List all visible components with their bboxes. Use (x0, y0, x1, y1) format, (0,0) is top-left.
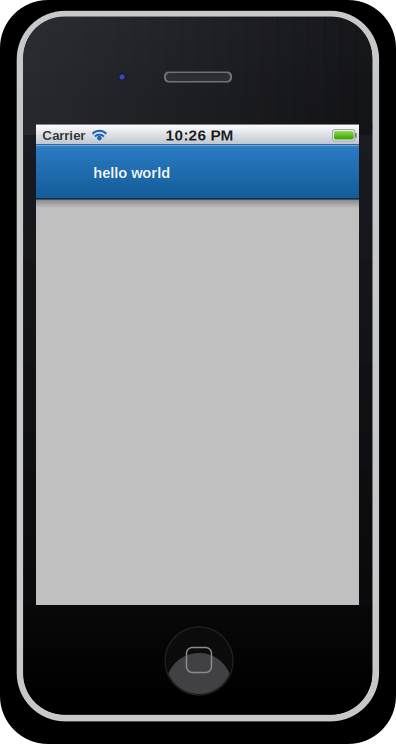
staticText: 10:26 PM (165, 127, 233, 144)
staticText: Carrier (42, 128, 85, 143)
button[interactable]: hello world (93, 161, 213, 185)
staticText: hello world (93, 165, 170, 181)
